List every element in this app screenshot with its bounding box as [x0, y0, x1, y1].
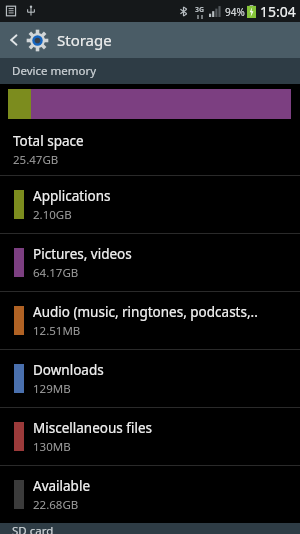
staticText: 25.47GB	[13, 152, 59, 168]
button[interactable]: Pictures, videos	[0, 234, 300, 291]
button[interactable]: Audio (music, ringtones, podcasts,..	[0, 292, 300, 349]
staticText: Available	[33, 477, 90, 495]
button[interactable]: Miscellaneous files	[0, 408, 300, 465]
staticText: Pictures, videos	[33, 245, 132, 263]
staticText: 22.68GB	[33, 497, 79, 513]
button[interactable]: Back	[0, 22, 300, 58]
staticText: Device memory	[12, 63, 97, 79]
staticText: 129MB	[33, 381, 71, 397]
staticText: 130MB	[33, 439, 71, 455]
staticText: 64.17GB	[33, 265, 79, 281]
staticText: 94%	[225, 5, 245, 19]
staticText: Applications	[33, 187, 111, 205]
staticText: Downloads	[33, 361, 104, 379]
staticText: 3G	[195, 5, 205, 15]
button[interactable]: Total space	[0, 124, 300, 175]
staticText: 15:04	[260, 2, 296, 21]
button[interactable]: Applications	[0, 176, 300, 233]
staticText: Total space	[13, 132, 84, 150]
staticText: Audio (music, ringtones, podcasts,..	[33, 303, 258, 321]
other: Back	[7, 33, 21, 47]
staticText: 12.51MB	[33, 323, 81, 339]
button[interactable]: Available	[0, 466, 300, 523]
staticText: 2.10GB	[33, 207, 72, 223]
button[interactable]: Downloads	[0, 350, 300, 407]
staticText: Storage	[57, 30, 112, 50]
staticText: SD card	[12, 523, 54, 534]
staticText: Miscellaneous files	[33, 419, 152, 437]
